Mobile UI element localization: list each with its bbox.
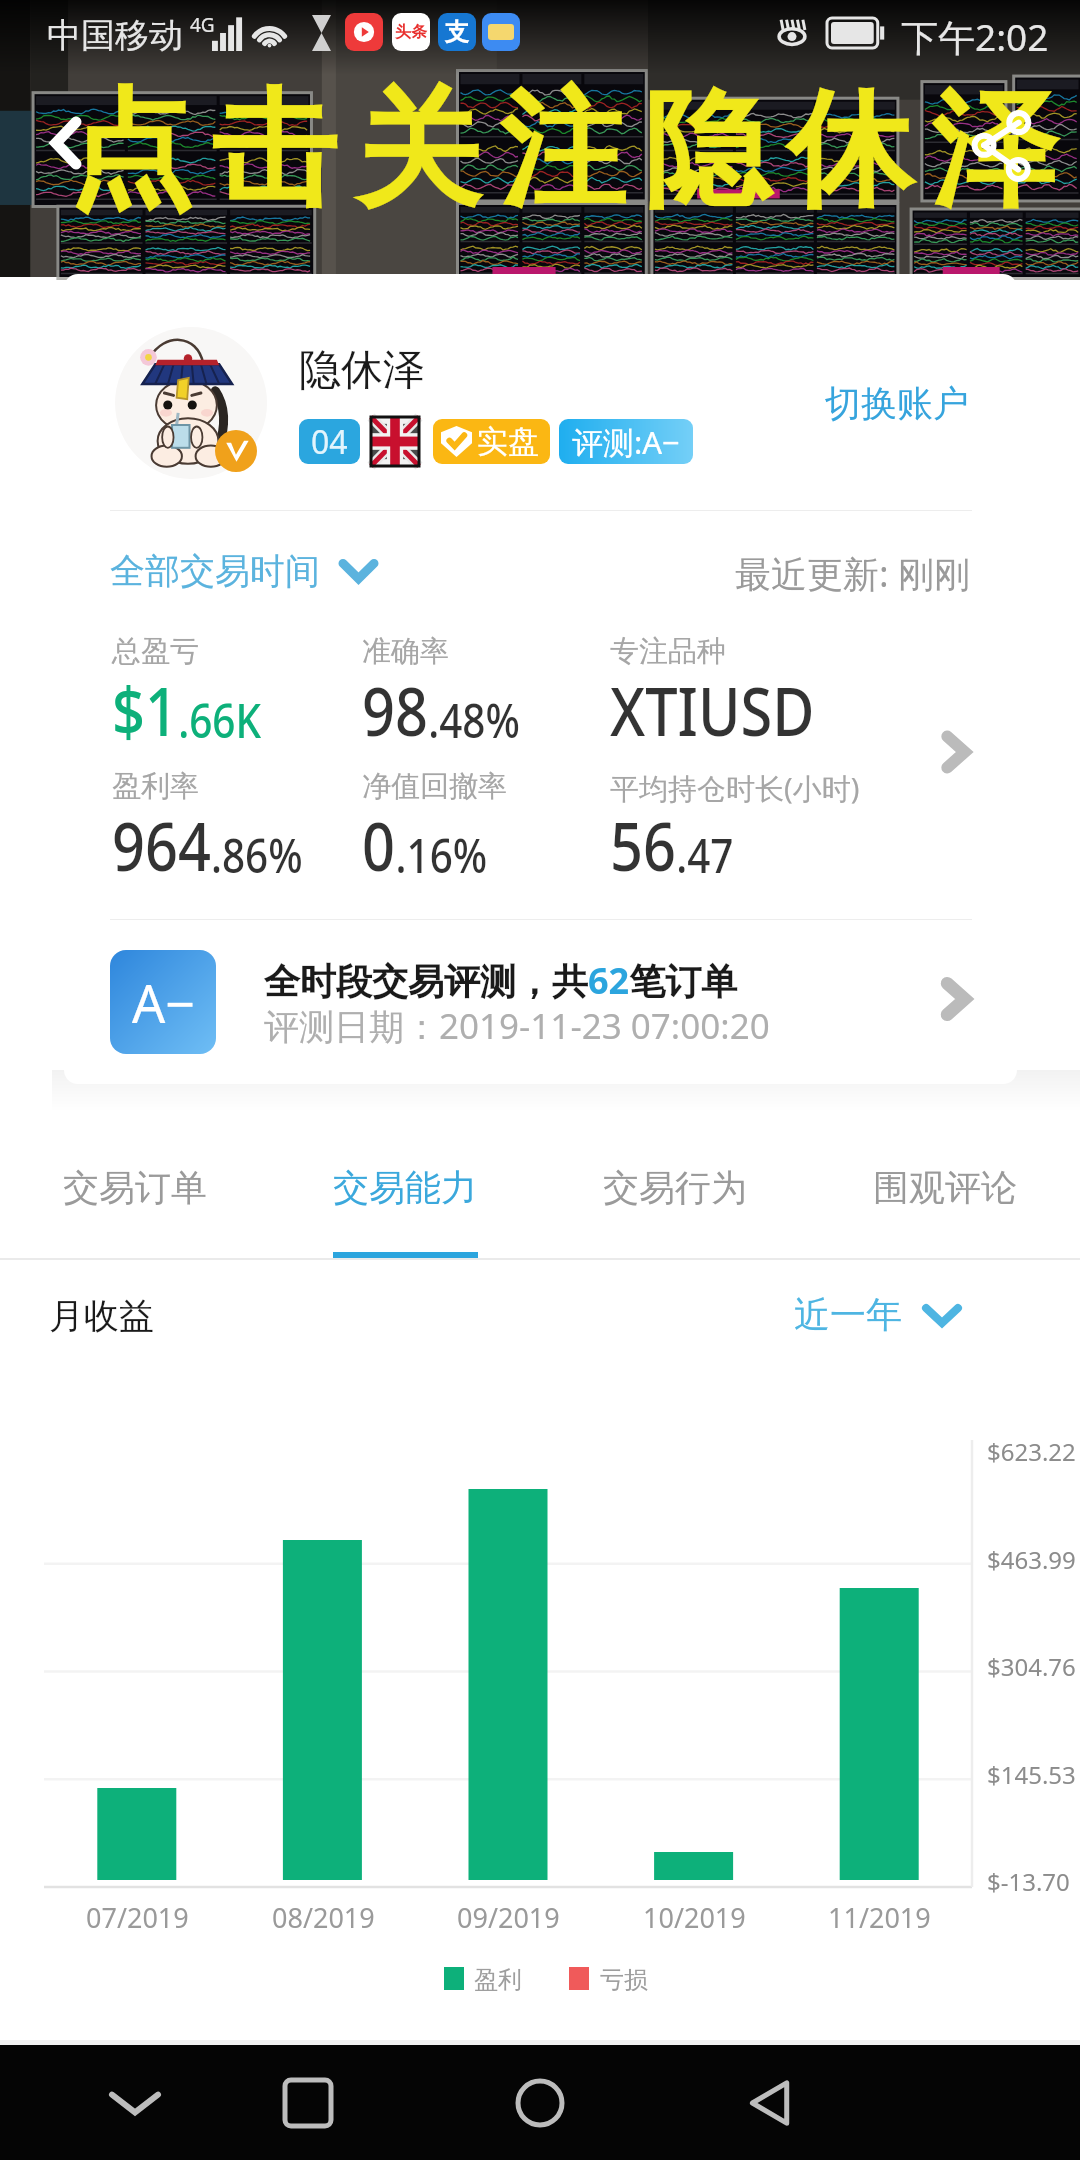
staticText: $-13.70 — [987, 1865, 1070, 1898]
staticText: 盈利 — [474, 1965, 522, 1995]
staticText: 近一年 — [794, 1292, 902, 1337]
button[interactable]: Share — [955, 99, 1049, 193]
staticText: $304.76 — [987, 1650, 1076, 1683]
staticText: 964 — [112, 799, 211, 890]
staticText: 切换账户 — [825, 381, 969, 426]
staticText: 全部交易时间 — [110, 549, 320, 593]
staticText: .47 — [676, 823, 734, 887]
staticText: 0 — [362, 799, 395, 890]
staticText: 评测:A− — [572, 421, 680, 463]
button[interactable]: 交易行为 — [540, 1101, 810, 1251]
staticText: 隐休泽 — [299, 344, 425, 397]
button[interactable]: Hide keyboard — [85, 2045, 185, 2160]
staticText: 围观评论 — [873, 1165, 1017, 1210]
staticText: 10/2019 — [643, 1899, 746, 1936]
staticText: 全时段交易评测，共62笔订单 — [264, 956, 738, 1005]
button[interactable]: 交易订单 — [0, 1101, 270, 1251]
button[interactable]: Recents — [258, 2045, 358, 2160]
staticText: 支 — [445, 17, 469, 47]
staticText: 4G — [190, 12, 215, 38]
button[interactable]: 围观评论 — [810, 1101, 1080, 1251]
button[interactable]: 近一年 — [794, 1292, 958, 1337]
staticText: 月收益 — [49, 1294, 154, 1338]
staticText: 平均持仓时长(小时) — [610, 768, 860, 808]
staticText: 07/2019 — [86, 1899, 189, 1936]
staticText: 98 — [362, 664, 428, 755]
staticText: 专注品种 — [610, 633, 726, 670]
staticText: 净值回撤率 — [362, 768, 507, 805]
staticText: 最近更新: 刚刚 — [735, 549, 971, 598]
staticText: XTIUSD — [610, 664, 815, 755]
staticText: .48% — [428, 688, 520, 752]
staticText: 实盘 — [477, 422, 539, 461]
staticText: 56 — [610, 799, 676, 890]
staticText: 头条 — [395, 22, 427, 42]
staticText: 点击关注隐休泽 — [58, 72, 1066, 231]
staticText: 交易订单 — [63, 1165, 207, 1210]
staticText: A− — [132, 967, 195, 1038]
button[interactable]: Back — [720, 2045, 820, 2160]
staticText: 盈利率 — [112, 768, 199, 805]
staticText: 08/2019 — [272, 1899, 375, 1936]
button[interactable]: A− — [64, 939, 1017, 1084]
staticText: $1 — [112, 664, 178, 755]
staticText: 中国移动 — [47, 14, 183, 57]
button[interactable]: 全部交易时间 — [110, 549, 374, 593]
button[interactable]: 交易能力 — [270, 1101, 540, 1251]
staticText: $623.22 — [987, 1435, 1076, 1468]
staticText: $145.53 — [987, 1758, 1076, 1791]
staticText: 下午2:02 — [901, 11, 1049, 62]
staticText: $463.99 — [987, 1543, 1076, 1576]
staticText: 交易能力 — [333, 1165, 477, 1210]
staticText: .86% — [211, 823, 303, 887]
staticText: 准确率 — [362, 633, 449, 670]
button[interactable]: Home — [490, 2045, 590, 2160]
staticText: 总盈亏 — [112, 633, 199, 670]
staticText: .16% — [395, 823, 487, 887]
staticText: 09/2019 — [457, 1899, 560, 1936]
staticText: 交易行为 — [603, 1165, 747, 1210]
staticText: 亏损 — [600, 1965, 648, 1995]
button[interactable]: Back — [21, 98, 111, 188]
staticText: 评测日期：2019-11-23 07:00:20 — [264, 1002, 770, 1050]
button[interactable]: 切换账户 — [819, 375, 975, 432]
staticText: .66K — [178, 688, 262, 752]
staticText: 04 — [311, 420, 348, 464]
staticText: 11/2019 — [828, 1899, 931, 1936]
